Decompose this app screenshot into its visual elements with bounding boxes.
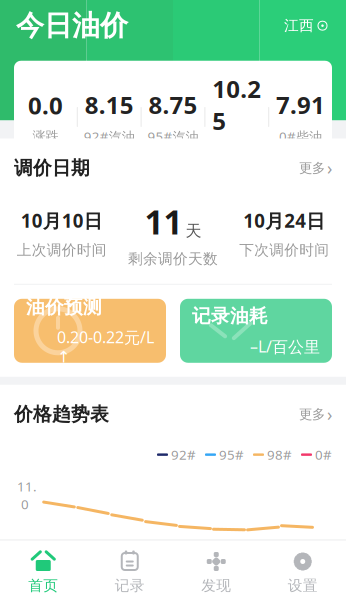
staticText: 95# — [219, 446, 244, 463]
staticText: –L/百公里 — [250, 336, 320, 357]
button[interactable]: 设置 — [259, 545, 346, 594]
staticText: 发现 — [201, 576, 231, 594]
staticText: 92# — [171, 446, 196, 463]
staticText: 天 — [185, 221, 201, 241]
staticText: › — [327, 156, 332, 179]
staticText: 98# — [267, 446, 292, 463]
staticText: 涨跌 — [32, 128, 58, 145]
staticText: › — [327, 403, 332, 426]
staticText: 10.25 — [212, 73, 261, 136]
button[interactable]: 油价预测 — [14, 299, 166, 363]
staticText: 10月10日 — [21, 208, 103, 233]
staticText: 0 — [21, 495, 29, 513]
staticText: 0.20-0.22元/L ↑ — [57, 326, 154, 366]
button[interactable]: 更多 — [293, 152, 332, 183]
staticText: 8.75 — [148, 89, 197, 121]
staticText: 0#柴油 — [279, 128, 322, 145]
staticText: 10月24日 — [243, 208, 325, 233]
staticText: 0# — [315, 446, 332, 463]
staticText: 更多 — [299, 406, 325, 422]
staticText: 晴 19℃ — [16, 62, 61, 80]
staticText: 油价预测 — [26, 296, 102, 318]
staticText: 今日油价 — [16, 8, 128, 43]
staticText: 首页 — [28, 576, 58, 594]
button[interactable]: 首页 — [0, 545, 86, 594]
staticText: 上次调价时间 — [17, 241, 107, 259]
button[interactable]: 江西 — [282, 13, 330, 39]
button[interactable]: 更多 — [293, 399, 332, 430]
button[interactable]: 发现 — [173, 545, 259, 594]
staticText: 剩余调价天数 — [128, 250, 218, 268]
staticText: 记录油耗 — [192, 305, 268, 327]
staticText: 价格趋势表 — [14, 403, 109, 426]
staticText: 7.91 — [276, 89, 325, 121]
staticText: 11 — [144, 199, 182, 244]
staticText: 下次调价时间 — [239, 241, 329, 259]
staticText: 记录 — [115, 576, 145, 594]
staticText: 更多 — [299, 160, 325, 176]
staticText: 0.0 — [28, 89, 63, 121]
button[interactable]: 记录 — [86, 545, 173, 594]
staticText: 湿度: 49 北风: 4 洗车: 适宜 — [16, 88, 171, 105]
staticText: 8.15 — [85, 89, 134, 121]
staticText: 11. — [17, 477, 37, 495]
staticText: 江西 — [284, 17, 314, 35]
staticText: 92#汽油 — [84, 128, 135, 145]
staticText: 95#汽油 — [147, 128, 198, 145]
staticText: 设置 — [288, 576, 318, 594]
button[interactable]: 记录油耗 — [180, 299, 332, 363]
staticText: 调价日期 — [14, 156, 90, 179]
